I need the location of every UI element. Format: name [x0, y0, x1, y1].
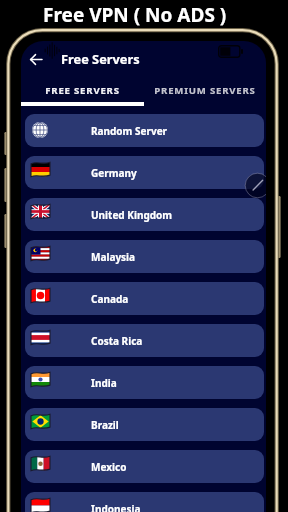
staticText: FREE SERVERS	[45, 84, 120, 97]
staticText: Indonesia	[91, 502, 141, 512]
button[interactable]: PREMIUM SERVERS	[143, 80, 266, 101]
button[interactable]: Random Server	[25, 114, 264, 147]
staticText: Free VPN ( No ADS )	[43, 2, 227, 28]
button[interactable]: Canada	[25, 282, 264, 315]
button[interactable]: Indonesia	[25, 492, 264, 512]
staticText: India	[91, 376, 117, 390]
staticText: Random Server	[91, 124, 168, 138]
staticText: PREMIUM SERVERS	[154, 84, 256, 97]
button[interactable]: Costa Rica	[25, 324, 264, 357]
button[interactable]: FREE SERVERS	[21, 80, 143, 101]
button[interactable]: Back	[26, 49, 46, 69]
staticText: Free Servers	[61, 50, 140, 67]
staticText: Costa Rica	[91, 334, 143, 348]
button[interactable]: India	[25, 366, 264, 399]
staticText: Brazil	[91, 418, 119, 432]
button[interactable]: Malaysia	[25, 240, 264, 273]
button[interactable]: Brazil	[25, 408, 264, 441]
staticText: Malaysia	[91, 250, 136, 264]
staticText: Canada	[91, 292, 129, 306]
staticText: Germany	[91, 166, 137, 180]
button[interactable]: United Kingdom	[25, 198, 264, 231]
button[interactable]: Germany	[25, 156, 264, 189]
button[interactable]: Mexico	[25, 450, 264, 483]
staticText: United Kingdom	[91, 208, 173, 222]
staticText: Mexico	[91, 460, 127, 474]
